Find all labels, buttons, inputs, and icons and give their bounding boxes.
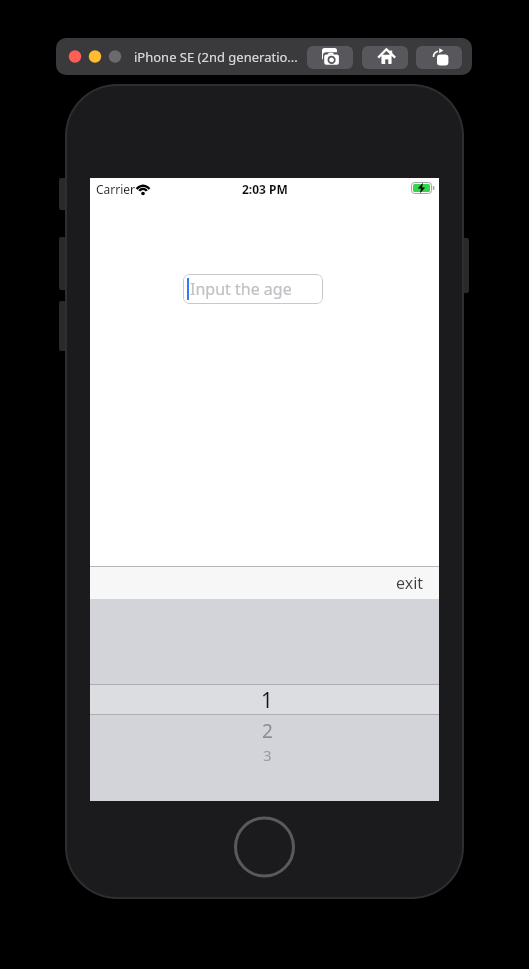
button[interactable]: 2	[262, 718, 273, 744]
button[interactable]: exit	[396, 572, 424, 594]
staticText: iPhone SE (2nd generatio...	[134, 48, 298, 66]
staticText: Carrier	[96, 181, 136, 197]
button[interactable]	[362, 46, 408, 69]
button[interactable]: 3	[263, 745, 272, 765]
staticText: 2:03 PM	[242, 181, 288, 197]
button[interactable]: 1	[261, 686, 274, 715]
staticText: exit	[396, 572, 424, 594]
staticText: Input the age	[190, 278, 292, 300]
button[interactable]	[307, 46, 353, 69]
button[interactable]	[416, 46, 462, 69]
button[interactable]: Input the age	[183, 274, 323, 304]
